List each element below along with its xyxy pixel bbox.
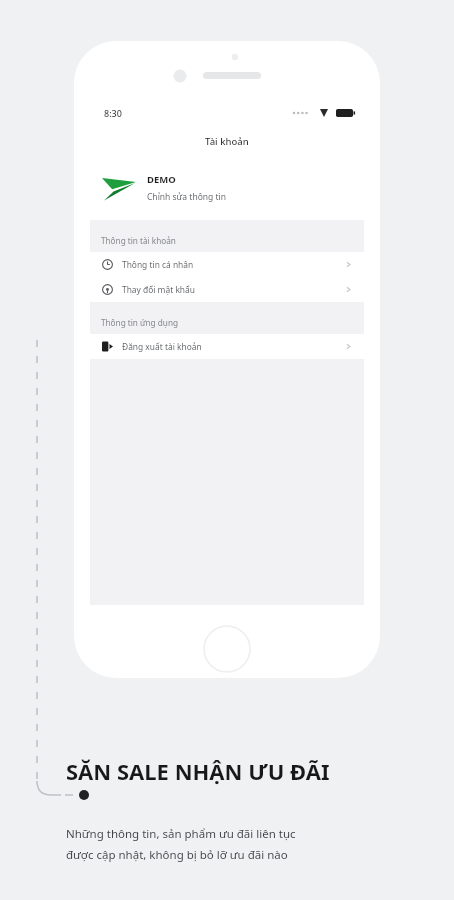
staticText: SĂN SALE NHẬN ƯU ĐÃI [66,756,330,786]
button[interactable]: Thay đổi mật khẩu [90,277,364,302]
button[interactable]: DEMO [90,156,364,220]
staticText: Những thông tin, sản phẩm ưu đãi liên tụ… [66,826,296,842]
staticText: Chỉnh sửa thông tin [147,191,226,203]
button[interactable]: Thông tin cá nhân [90,252,364,277]
staticText: Tài khoản [205,135,249,148]
staticText: DEMO [147,173,176,186]
button[interactable]: Đăng xuất tài khoản [90,334,364,359]
staticText: Thông tin ứng dụng [101,317,178,328]
staticText: Thông tin tài khoản [101,235,176,246]
staticText: được cập nhật, không bị bỏ lỡ ưu đãi nào [66,847,288,863]
staticText: Thông tin cá nhân [122,259,194,270]
staticText: Thay đổi mật khẩu [122,284,195,295]
staticText: 8:30 [104,107,122,119]
staticText: Đăng xuất tài khoản [122,341,202,352]
